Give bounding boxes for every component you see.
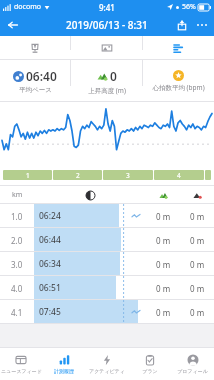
button[interactable]: Details: [143, 36, 214, 60]
staticText: 2.0: [11, 235, 23, 246]
button[interactable]: 06:40: [0, 60, 70, 102]
button[interactable]: プラン: [128, 348, 171, 380]
staticText: 0 m: [190, 259, 205, 270]
button[interactable]: 06:24: [0, 204, 214, 228]
staticText: 0 m: [190, 211, 205, 222]
staticText: 4.0: [11, 283, 23, 294]
staticText: 1.0: [11, 211, 23, 222]
staticText: 07:45: [39, 306, 61, 318]
staticText: 平均ペース: [19, 86, 52, 94]
staticText: 56%: [182, 2, 196, 12]
staticText: 0 m: [190, 283, 205, 294]
staticText: 2019/06/13 - 8:31: [66, 18, 148, 32]
staticText: 0 m: [190, 307, 205, 318]
staticText: 4: [177, 171, 181, 180]
staticText: 0 m: [156, 307, 171, 318]
button[interactable]: プロフィール: [171, 348, 214, 380]
staticText: docomo: [14, 2, 41, 12]
staticText: 06:51: [39, 282, 61, 294]
staticText: 06:24: [39, 210, 61, 222]
staticText: 06:34: [39, 258, 61, 270]
button[interactable]: Map: [0, 36, 70, 60]
staticText: アクティビティ: [89, 368, 125, 374]
staticText: 3: [126, 171, 130, 180]
staticText: 06:44: [39, 234, 61, 246]
button[interactable]: ニュースフィード: [0, 348, 42, 380]
button[interactable]: 0: [71, 60, 142, 102]
staticText: プラン: [142, 368, 158, 374]
button[interactable]: 06:44: [0, 228, 214, 252]
staticText: 0 m: [156, 259, 171, 270]
button[interactable]: 計測履歴: [42, 348, 85, 380]
staticText: 0 m: [190, 235, 205, 246]
staticText: 3.0: [11, 259, 23, 270]
button[interactable]: Share: [172, 15, 192, 35]
staticText: 計測履歴: [54, 368, 74, 374]
button[interactable]: Back: [4, 16, 22, 34]
button[interactable]: 06:34: [0, 252, 214, 276]
button[interactable]: 心拍数平均 (bpm): [143, 60, 214, 102]
staticText: km: [12, 190, 23, 200]
staticText: 1: [26, 171, 30, 180]
staticText: 0 m: [156, 283, 171, 294]
button[interactable]: アクティビティ: [85, 348, 128, 380]
button[interactable]: Photos: [71, 36, 142, 60]
button[interactable]: 06:51: [0, 276, 214, 300]
staticText: 2: [76, 171, 80, 180]
staticText: 9:41: [99, 2, 115, 13]
staticText: 4.1: [11, 307, 23, 318]
button[interactable]: 07:45: [0, 300, 214, 324]
staticText: プロフィール: [177, 368, 208, 374]
staticText: 上昇高度 (m): [88, 86, 126, 95]
staticText: 0: [110, 68, 117, 84]
staticText: 0 m: [156, 211, 171, 222]
button[interactable]: More options: [192, 15, 212, 35]
staticText: ニュースフィード: [1, 368, 42, 374]
staticText: 06:40: [26, 68, 57, 84]
staticText: 心拍数平均 (bpm): [152, 83, 205, 92]
staticText: 0 m: [156, 235, 171, 246]
